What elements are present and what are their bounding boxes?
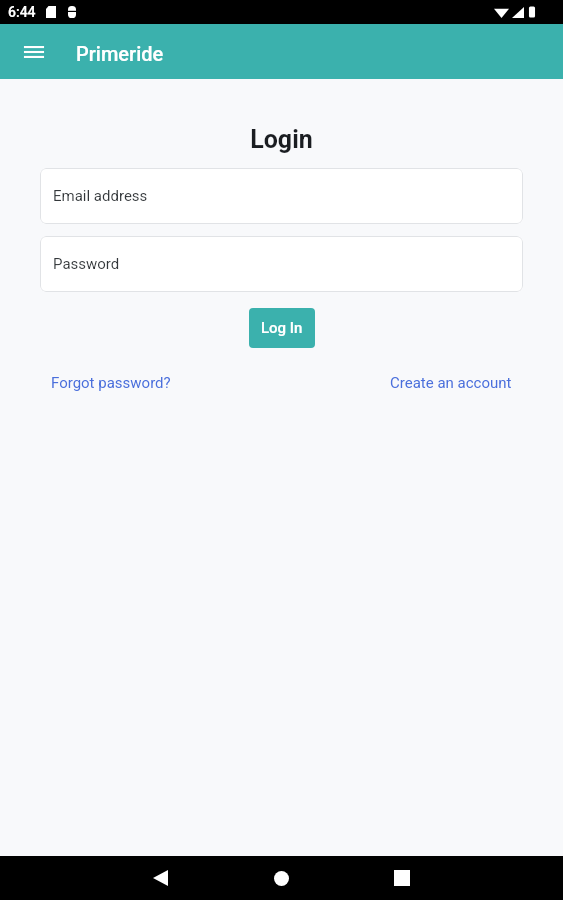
- button[interactable]: Home: [259, 856, 304, 900]
- button[interactable]: Back: [138, 856, 183, 900]
- button[interactable]: Forgot password?: [45, 370, 177, 396]
- button[interactable]: Log In: [249, 308, 315, 348]
- button[interactable]: Create an account: [384, 370, 518, 396]
- button[interactable]: Open navigation menu: [16, 34, 52, 70]
- staticText: 6:44: [8, 4, 36, 20]
- button[interactable]: Email address: [40, 168, 523, 224]
- staticText: Forgot password?: [51, 374, 171, 392]
- staticText: Password: [53, 255, 120, 273]
- staticText: Create an account: [390, 374, 512, 392]
- staticText: Primeride: [76, 42, 164, 65]
- staticText: Log In: [261, 319, 303, 337]
- button[interactable]: Recent apps: [379, 856, 424, 900]
- button[interactable]: Password: [40, 236, 523, 292]
- staticText: Login: [0, 125, 563, 154]
- staticText: Email address: [53, 187, 148, 205]
